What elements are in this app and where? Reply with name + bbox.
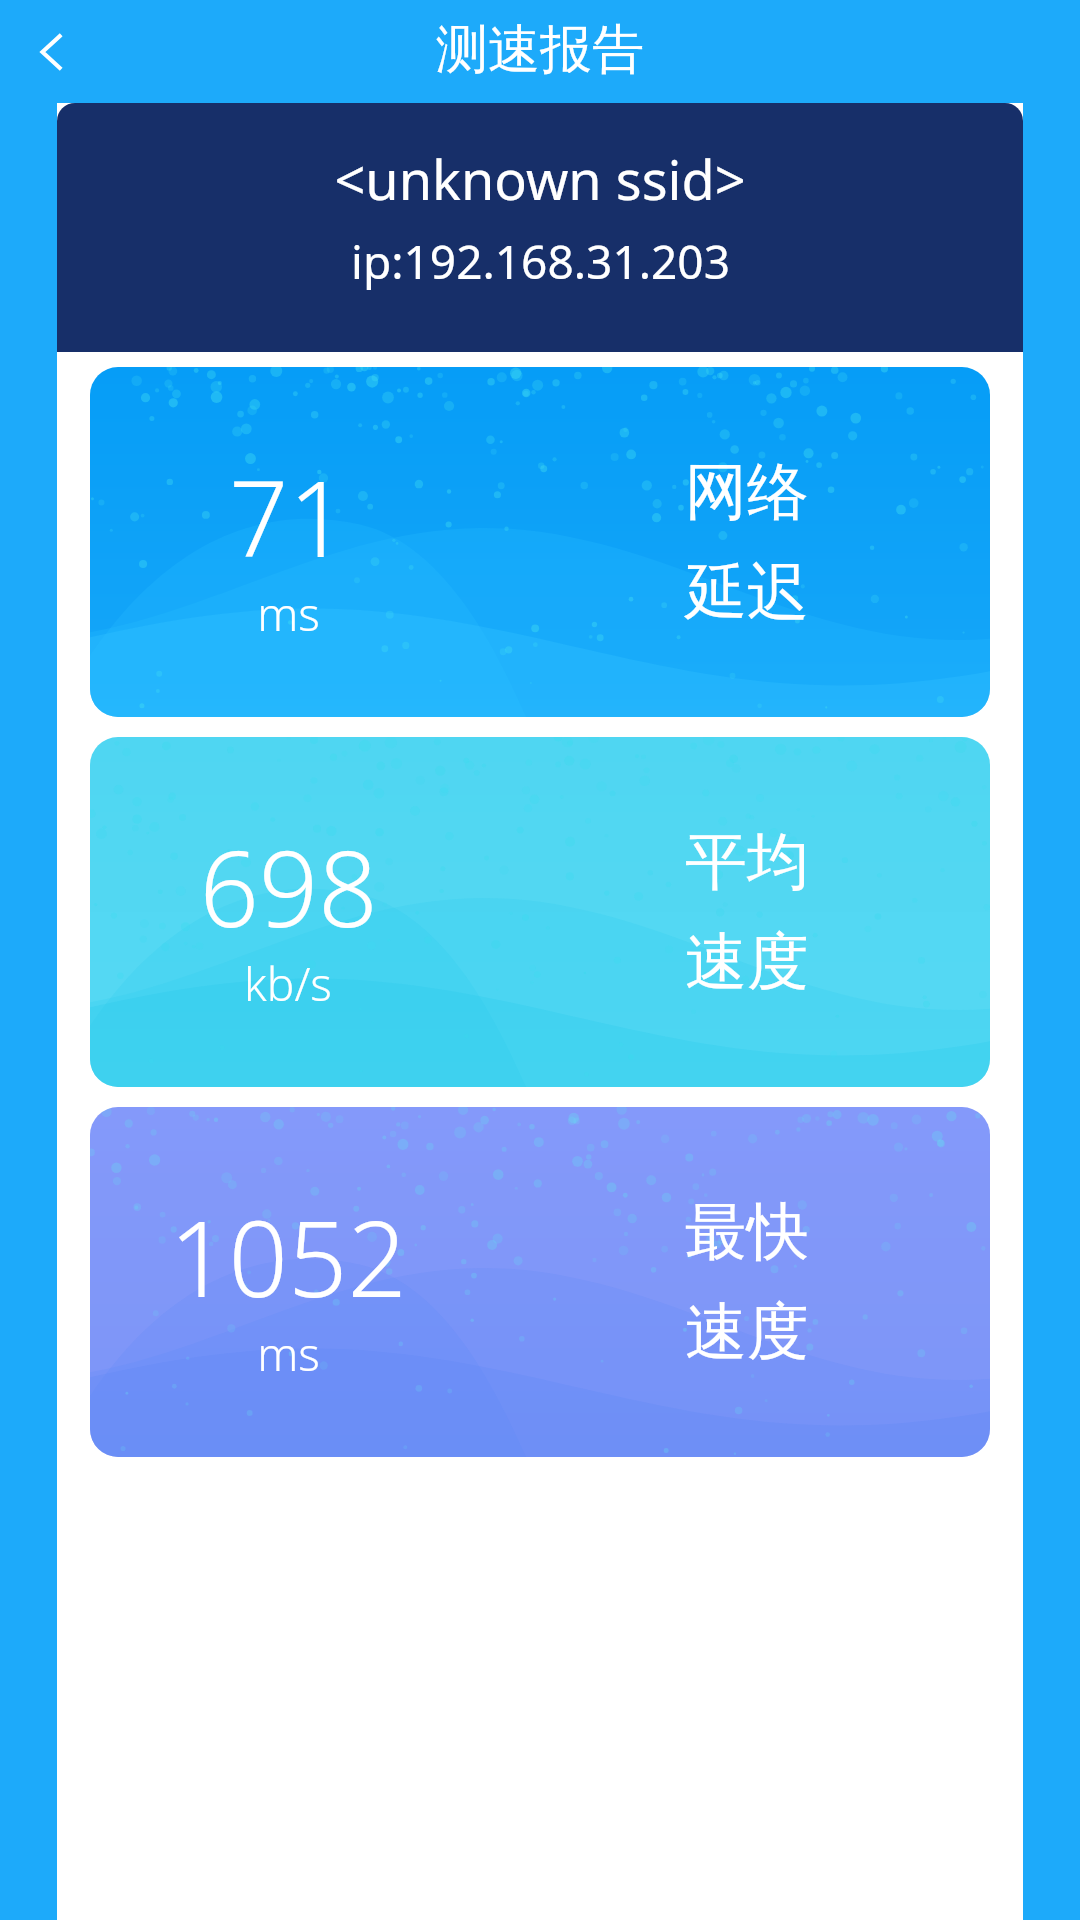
staticText: 网络	[685, 453, 809, 531]
button[interactable]: Back	[4, 4, 100, 100]
staticText: kb/s	[244, 952, 332, 1015]
button[interactable]: 698	[90, 737, 990, 1087]
staticText: 平均	[685, 823, 809, 901]
staticText: ip:192.168.31.203	[351, 230, 730, 293]
staticText: ms	[257, 582, 320, 645]
staticText: 速度	[685, 923, 809, 1001]
staticText: ms	[257, 1322, 320, 1385]
staticText: 71	[229, 446, 348, 588]
staticText: 速度	[685, 1293, 809, 1371]
staticText: <unknown ssid>	[334, 142, 746, 216]
staticText: 延迟	[685, 553, 809, 631]
button[interactable]: 1052	[90, 1107, 990, 1457]
staticText: 698	[199, 816, 378, 958]
staticText: 最快	[685, 1193, 809, 1271]
button[interactable]: 71	[90, 367, 990, 717]
staticText: 测速报告	[436, 17, 644, 83]
staticText: 1052	[169, 1186, 407, 1328]
